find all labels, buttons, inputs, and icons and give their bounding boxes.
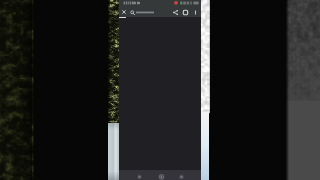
button[interactable]: Recent apps [176,172,186,180]
button[interactable]: Close tab [120,7,128,17]
button[interactable]: Back [134,172,144,180]
button[interactable]: Switch tabs [181,7,190,17]
button[interactable]: More options [191,7,200,17]
button[interactable] [130,7,174,17]
button[interactable]: Home [156,172,166,180]
button[interactable]: Share [171,7,180,17]
